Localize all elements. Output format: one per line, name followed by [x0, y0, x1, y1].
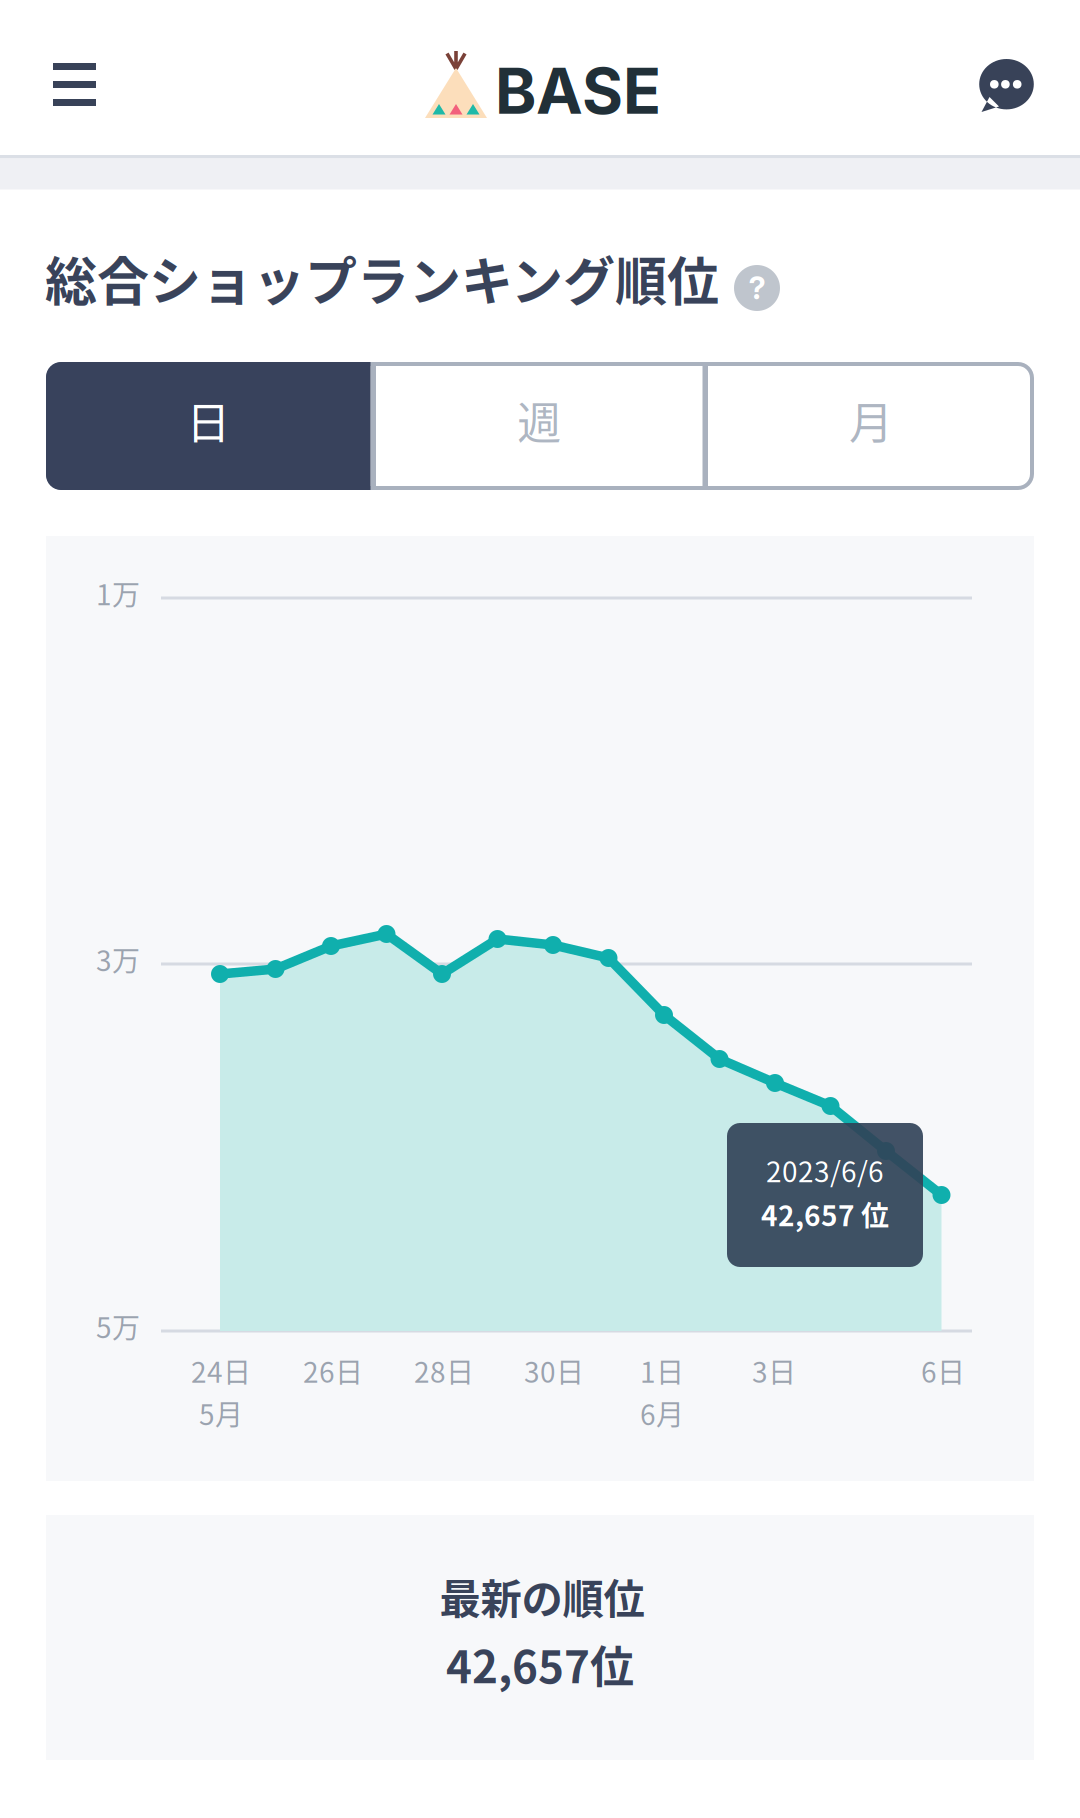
button[interactable]: 月: [708, 356, 1034, 484]
button[interactable]: 週: [370, 356, 708, 484]
staticText: 最新の順位: [439, 1566, 644, 1626]
staticText: 24日: [191, 1350, 251, 1391]
staticText: 28日: [414, 1350, 474, 1391]
staticText: ?: [748, 269, 765, 306]
staticText: 3日: [752, 1350, 796, 1391]
staticText: 2023/6/6: [766, 1150, 884, 1190]
button[interactable]: Help: [734, 265, 780, 311]
staticText: 日: [186, 388, 230, 452]
staticText: 週: [517, 388, 561, 452]
button[interactable]: Messages: [935, 0, 1080, 154]
button[interactable]: Menu: [0, 0, 140, 154]
staticText: 42,657 位: [761, 1194, 889, 1234]
staticText: 6月: [640, 1393, 684, 1433]
staticText: 26日: [303, 1350, 363, 1391]
staticText: 30日: [524, 1350, 584, 1391]
staticText: 総合ショップランキング順位: [45, 240, 719, 316]
staticText: 3万: [96, 939, 140, 979]
staticText: 1日: [640, 1350, 684, 1391]
staticText: 42,657位: [446, 1632, 634, 1696]
staticText: 5月: [199, 1393, 243, 1433]
staticText: BASE: [495, 53, 661, 129]
staticText: 5万: [96, 1306, 140, 1346]
button[interactable]: 日: [46, 356, 370, 484]
staticText: 月: [849, 388, 893, 452]
staticText: 1万: [96, 573, 140, 613]
staticText: 6日: [921, 1350, 965, 1391]
